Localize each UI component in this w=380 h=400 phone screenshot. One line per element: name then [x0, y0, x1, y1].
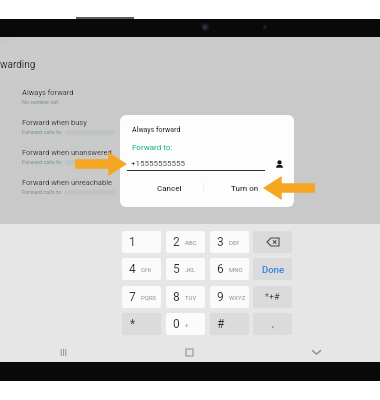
staticText: ,: [272, 319, 274, 330]
staticText: 8: [173, 290, 180, 304]
button[interactable]: Forward when busy: [0, 118, 380, 148]
button[interactable]: 0: [166, 313, 205, 335]
button[interactable]: Recent apps: [0, 342, 126, 362]
staticText: Forward when unreachable: [22, 178, 112, 187]
staticText: *: [130, 317, 136, 331]
button[interactable]: *: [122, 313, 161, 335]
staticText: TUV: [185, 294, 197, 301]
button[interactable]: ,: [253, 313, 292, 335]
staticText: Forward to:: [132, 143, 173, 152]
staticText: Forward when busy: [22, 118, 87, 127]
button[interactable]: 1: [122, 231, 161, 253]
staticText: PQRS: [141, 294, 157, 301]
staticText: Forward calls to: [22, 189, 62, 195]
staticText: 3: [217, 235, 224, 249]
staticText: JKL: [185, 266, 196, 273]
button[interactable]: 2: [166, 231, 205, 253]
button[interactable]: 3: [210, 231, 249, 253]
button[interactable]: Always forward: [0, 88, 380, 118]
staticText: *+#: [265, 292, 280, 303]
button[interactable]: Forward when unanswered: [0, 148, 380, 178]
staticText: Always forward: [132, 126, 181, 134]
button[interactable]: 9: [210, 286, 249, 308]
button[interactable]: 4: [122, 258, 161, 280]
button[interactable]: Backspace: [253, 231, 292, 253]
button[interactable]: Cancel: [151, 179, 188, 198]
staticText: 7: [129, 290, 136, 304]
staticText: 9: [217, 290, 224, 304]
staticText: Forward when unanswered: [22, 148, 112, 157]
button[interactable]: Home: [126, 342, 253, 362]
button[interactable]: Turn on: [225, 179, 265, 198]
button[interactable]: Choose contact: [272, 157, 286, 171]
staticText: Cancel: [157, 184, 182, 193]
staticText: ABC: [185, 239, 197, 246]
staticText: Always forward: [22, 88, 74, 97]
button[interactable]: 5: [166, 258, 205, 280]
button[interactable]: *+#: [253, 286, 292, 308]
staticText: No number set: [22, 99, 59, 105]
staticText: 5: [173, 262, 180, 276]
staticText: 0: [173, 317, 180, 331]
staticText: Done: [262, 264, 284, 275]
staticText: 6: [217, 262, 224, 276]
button[interactable]: #: [210, 313, 249, 335]
staticText: DEF: [229, 239, 240, 246]
staticText: +15555555555: [131, 159, 185, 168]
button[interactable]: 8: [166, 286, 205, 308]
button[interactable]: Done: [253, 258, 292, 280]
staticText: #: [217, 317, 225, 331]
staticText: 4: [129, 262, 136, 276]
staticText: Forward calls to: [22, 159, 62, 165]
staticText: WXYZ: [229, 294, 246, 301]
staticText: Call forwarding: [0, 59, 36, 71]
button[interactable]: Forward when unreachable: [0, 178, 380, 208]
button[interactable]: 7: [122, 286, 161, 308]
staticText: Turn on: [231, 184, 259, 193]
button[interactable]: Hide keyboard: [253, 342, 380, 362]
staticText: 1: [129, 235, 136, 249]
staticText: Forward calls to: [22, 129, 62, 135]
staticText: GHI: [141, 266, 151, 273]
staticText: 2: [173, 235, 180, 249]
staticText: MNO: [229, 266, 243, 273]
staticText: +: [185, 321, 189, 328]
button[interactable]: 6: [210, 258, 249, 280]
